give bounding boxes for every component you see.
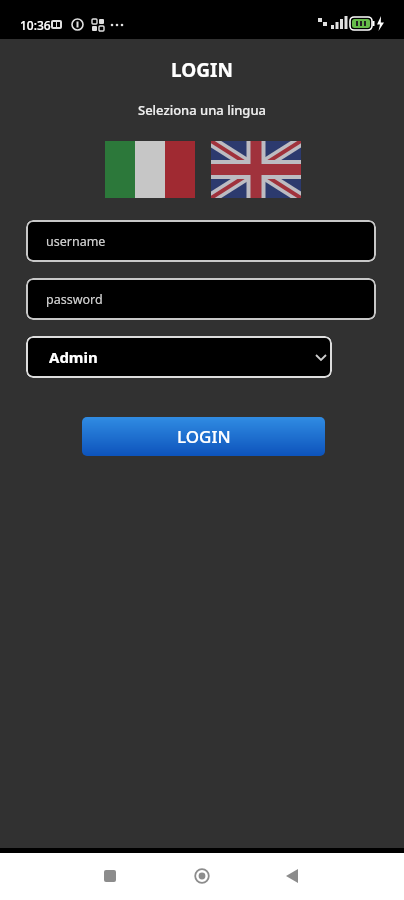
- staticText: password: [46, 291, 103, 308]
- button[interactable]: [105, 141, 195, 198]
- button[interactable]: password: [26, 278, 376, 320]
- staticText: LOGIN: [177, 425, 231, 448]
- button[interactable]: username: [26, 220, 376, 262]
- button[interactable]: [211, 141, 301, 198]
- staticText: 10:36: [20, 17, 51, 33]
- staticText: username: [46, 233, 106, 250]
- button[interactable]: [104, 870, 116, 882]
- staticText: Seleziona una lingua: [0, 101, 404, 119]
- button[interactable]: [194, 868, 210, 884]
- button[interactable]: Admin: [26, 336, 332, 378]
- button[interactable]: LOGIN: [82, 417, 325, 456]
- staticText: LOGIN: [0, 57, 404, 83]
- button[interactable]: [286, 869, 298, 883]
- staticText: Admin: [49, 347, 98, 367]
